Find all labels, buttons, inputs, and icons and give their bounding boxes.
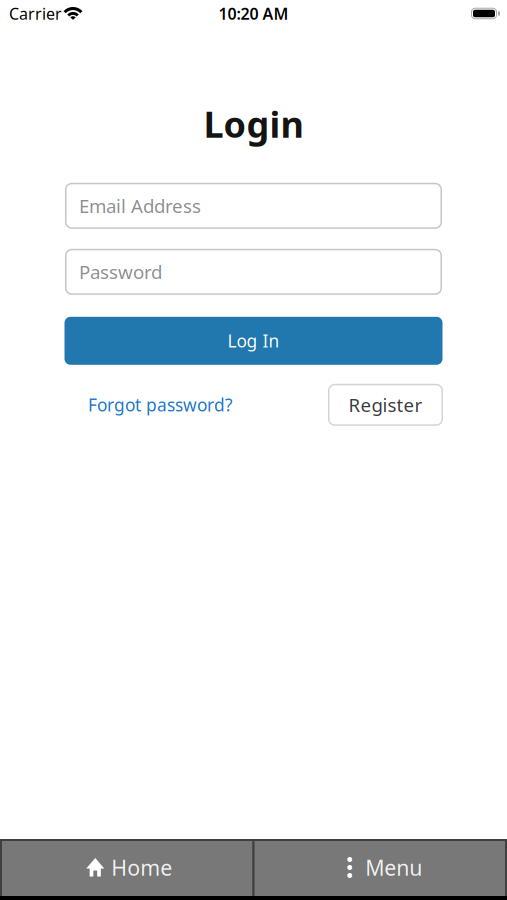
- button[interactable]: Home: [0, 839, 252, 896]
- staticText: Login: [203, 100, 303, 148]
- staticText: Home: [111, 853, 172, 882]
- button[interactable]: Menu: [254, 839, 507, 896]
- staticText: Password: [79, 259, 162, 284]
- button[interactable]: Log In: [64, 317, 442, 365]
- staticText: Forgot password?: [88, 393, 233, 416]
- staticText: Carrier: [9, 3, 62, 24]
- staticText: Register: [348, 392, 422, 417]
- staticText: Email Address: [79, 193, 201, 218]
- staticText: Menu: [365, 853, 422, 882]
- button[interactable]: Register: [328, 384, 443, 426]
- button[interactable]: Forgot password?: [65, 393, 233, 416]
- staticText: 10:20 AM: [218, 3, 288, 24]
- staticText: Log In: [227, 329, 279, 352]
